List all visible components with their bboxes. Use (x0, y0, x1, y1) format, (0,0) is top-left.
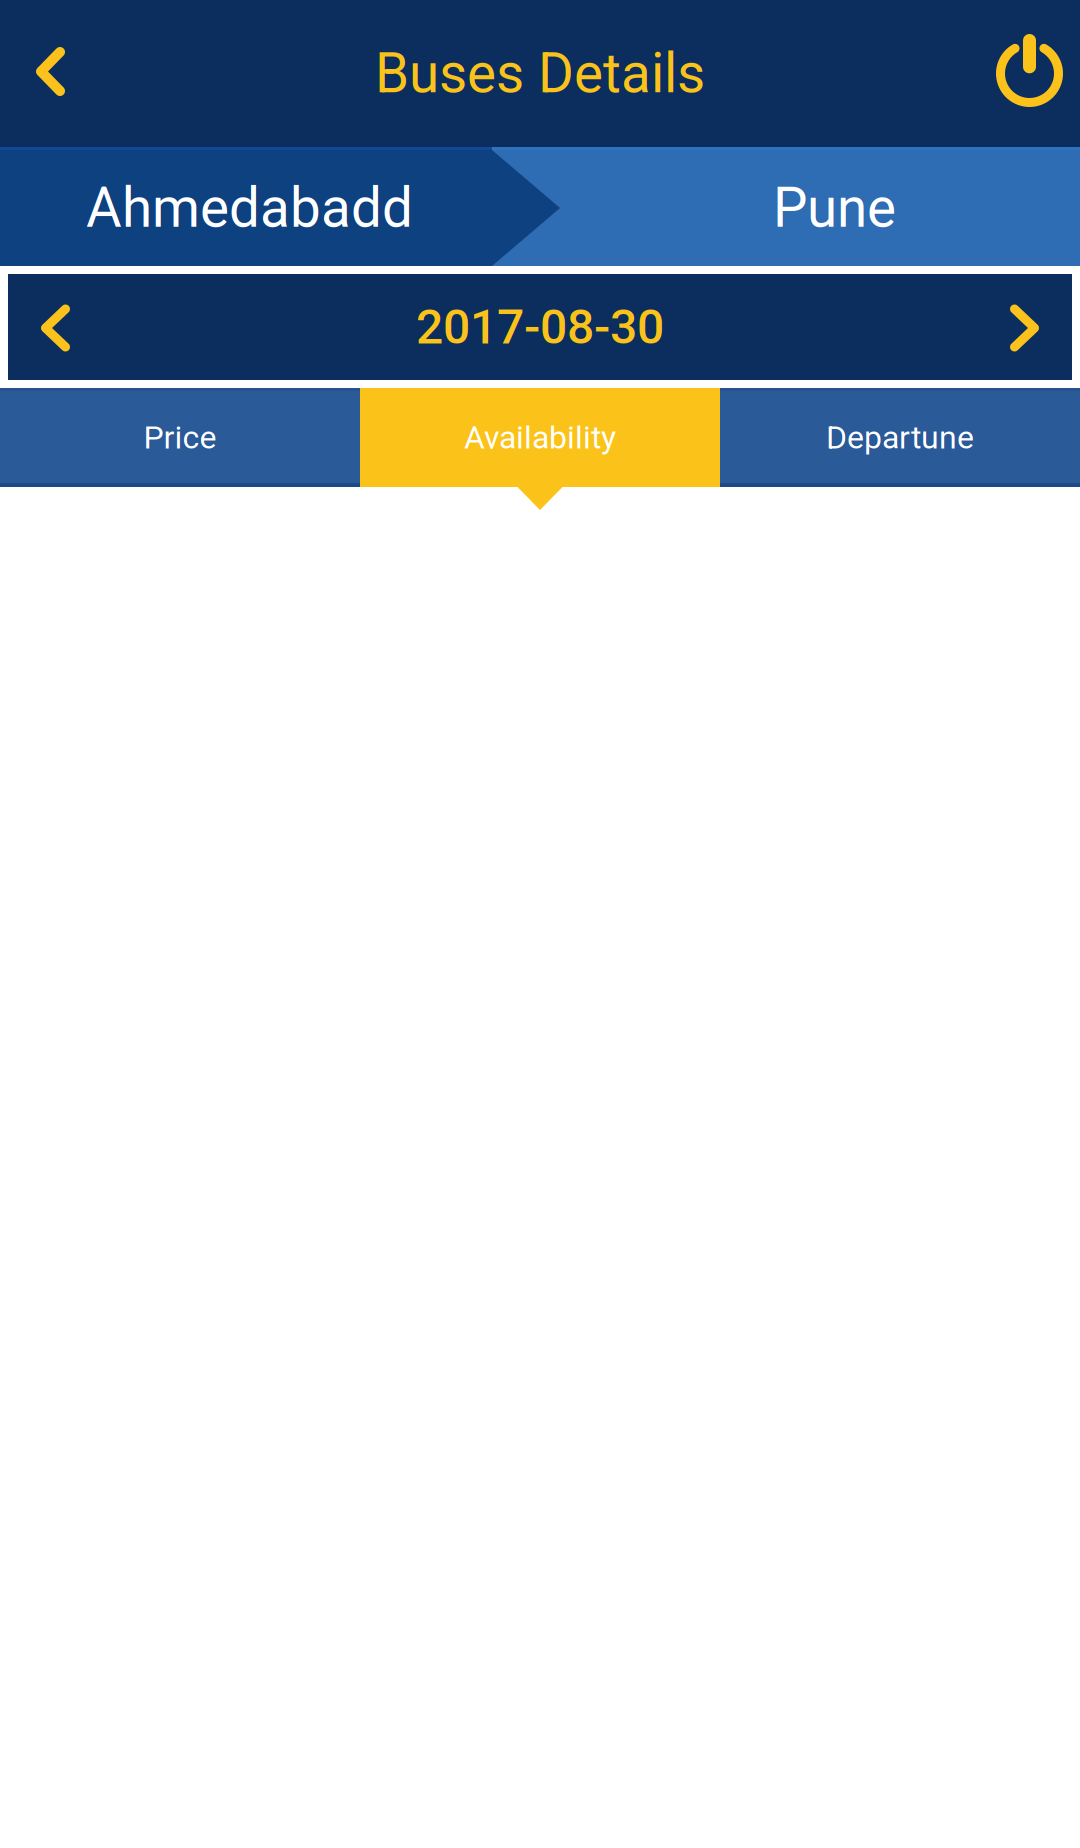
button[interactable]: Previous day (8, 274, 103, 380)
button[interactable]: Departune (720, 388, 1080, 487)
button[interactable]: Next day (977, 274, 1072, 380)
staticText: Pune (773, 176, 896, 240)
button[interactable]: Sign out (979, 0, 1080, 147)
staticText: Ahmedabadd (86, 176, 413, 240)
button[interactable]: Price (0, 388, 360, 487)
staticText: 2017-08-30 (416, 299, 664, 355)
staticText: Price (143, 419, 216, 456)
staticText: Departune (826, 419, 974, 456)
staticText: Buses Details (375, 41, 705, 106)
staticText: Availability (464, 419, 616, 456)
button[interactable]: Back (0, 0, 101, 147)
button[interactable]: Availability (360, 388, 720, 487)
